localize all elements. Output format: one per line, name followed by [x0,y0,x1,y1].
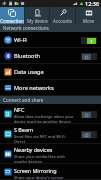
staticText: Connect and share [3,97,44,103]
staticText: Allow data exchange when your device tou… [14,114,74,124]
button[interactable]: More [76,7,101,24]
staticText: Screen Mirroring [14,167,57,174]
button[interactable]: Bluetooth [0,48,101,64]
staticText: Data usage [14,68,44,76]
button[interactable]: Bluetooth off [81,53,97,60]
staticText: Network connections [3,25,49,31]
staticText: Bluetooth [14,52,40,60]
staticText: 12:36 [85,0,100,7]
button[interactable]: Wi-Fi on [81,37,97,44]
staticText: S Beam [14,126,33,133]
staticText: More [83,18,94,24]
button[interactable]: NFC off [81,111,97,118]
staticText: Share your media files with nearby devic… [14,154,65,164]
button[interactable]: Nearby devices [0,144,101,164]
button[interactable]: My device [25,7,49,24]
staticText: Share your device's screen [14,175,64,180]
staticText: My device [27,18,48,24]
staticText: Nearby devices [14,146,53,153]
button[interactable]: Wi-Fi [0,32,101,48]
button[interactable]: NFC [0,104,101,124]
staticText: Wi-Fi [14,36,27,44]
staticText: NFC [14,106,25,113]
staticText: Connections [0,18,24,24]
button[interactable]: Connections [0,7,24,24]
button[interactable]: S Beam [0,124,101,144]
button[interactable]: Accounts [50,7,75,24]
staticText: Accounts [53,18,72,24]
button[interactable]: Screen Mirroring [0,164,101,180]
button[interactable]: More networks [0,80,101,96]
button[interactable]: Data usage [0,64,101,80]
button[interactable]: S Beam off [81,131,97,138]
staticText: More networks [14,84,54,92]
staticText: Send files via NFC and Wi-Fi Direct [14,134,66,144]
